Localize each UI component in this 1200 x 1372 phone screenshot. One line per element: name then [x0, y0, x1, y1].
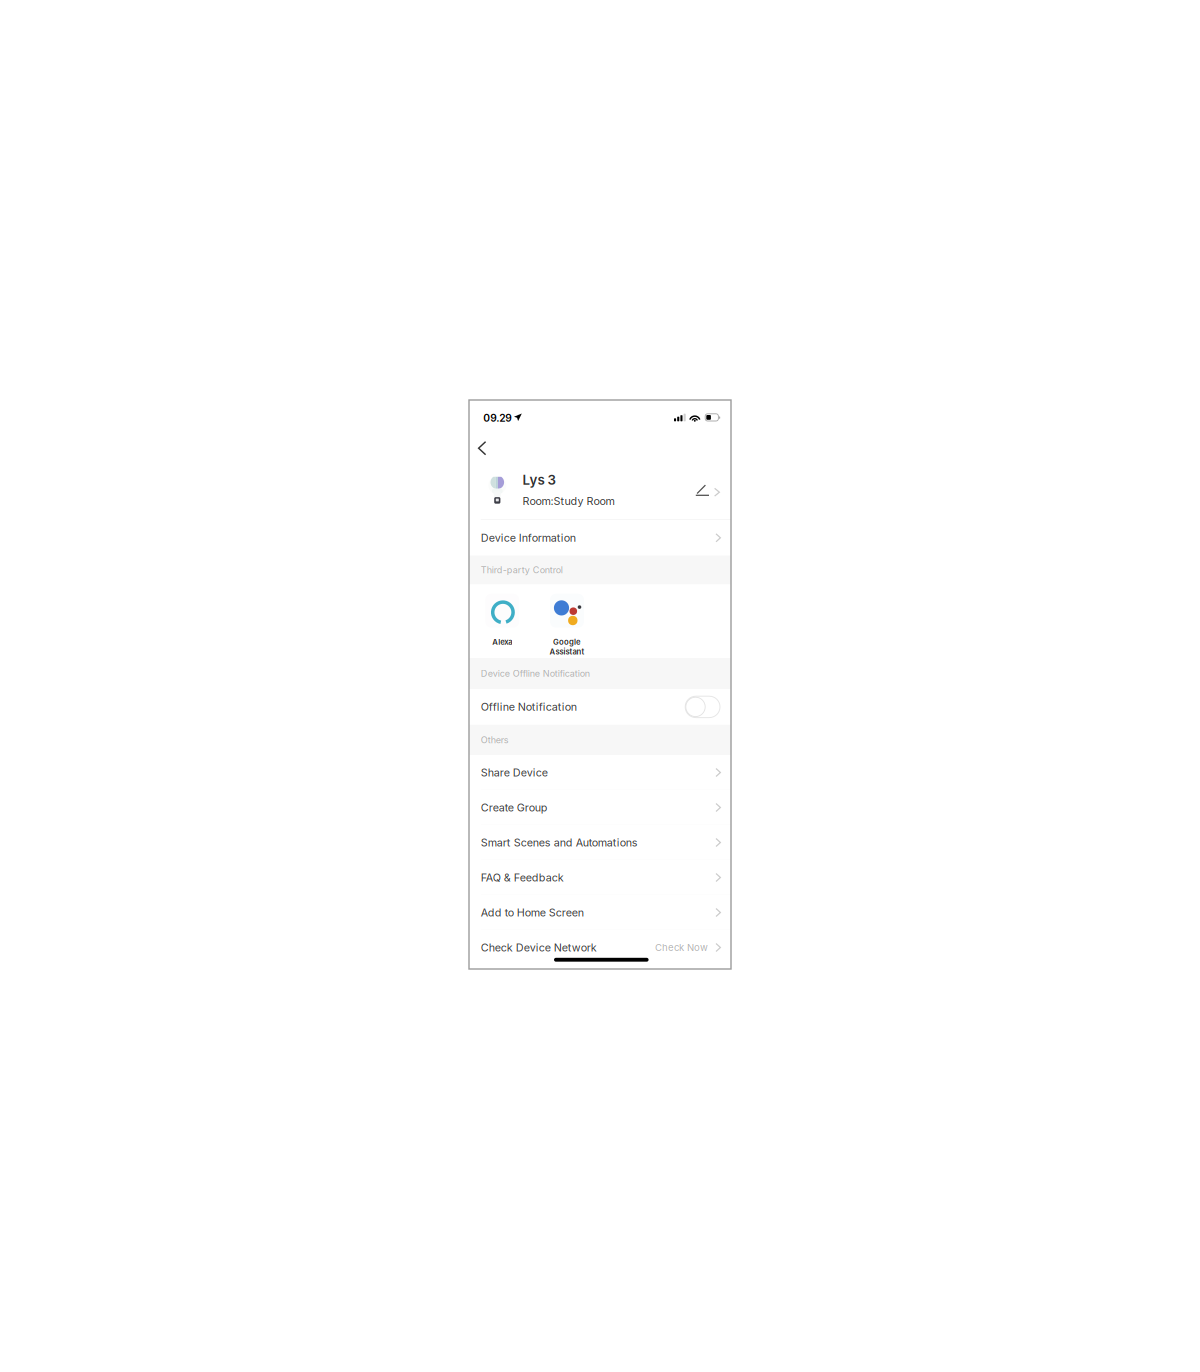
staticText: Assistant [549, 647, 584, 656]
staticText: Google [553, 637, 581, 647]
button[interactable]: Google Assistant [541, 594, 593, 667]
staticText: Device Offline Notification [481, 668, 590, 679]
button[interactable]: Smart Scenes and Automations [469, 825, 731, 860]
staticText: Third-party Control [481, 564, 563, 575]
staticText: Device Information [481, 531, 576, 544]
button[interactable]: Share Device [469, 755, 731, 790]
button[interactable]: Device Information [469, 520, 731, 555]
button[interactable]: Lys 3 [469, 462, 731, 519]
staticText: Smart Scenes and Automations [481, 836, 638, 849]
button[interactable]: Create Group [469, 790, 731, 825]
staticText: 09.29 [483, 412, 512, 424]
staticText: Room:Study Room [523, 494, 615, 508]
button[interactable]: FAQ & Feedback [469, 860, 731, 895]
staticText: Others [481, 734, 509, 745]
staticText: Check Device Network [481, 941, 597, 954]
button[interactable]: Check Device Network [469, 930, 731, 965]
staticText: Share Device [481, 766, 548, 779]
staticText: Check Now [655, 942, 708, 953]
staticText: Offline Notification [481, 700, 577, 713]
button[interactable]: Back [469, 429, 499, 455]
staticText: Alexa [492, 637, 512, 647]
staticText: Add to Home Screen [481, 906, 584, 919]
button[interactable]: Offline Notification [685, 696, 720, 718]
button[interactable]: Alexa [476, 594, 528, 658]
staticText: FAQ & Feedback [481, 871, 564, 884]
staticText: Create Group [481, 801, 548, 814]
staticText: Lys 3 [523, 472, 556, 488]
button[interactable]: Add to Home Screen [469, 895, 731, 930]
